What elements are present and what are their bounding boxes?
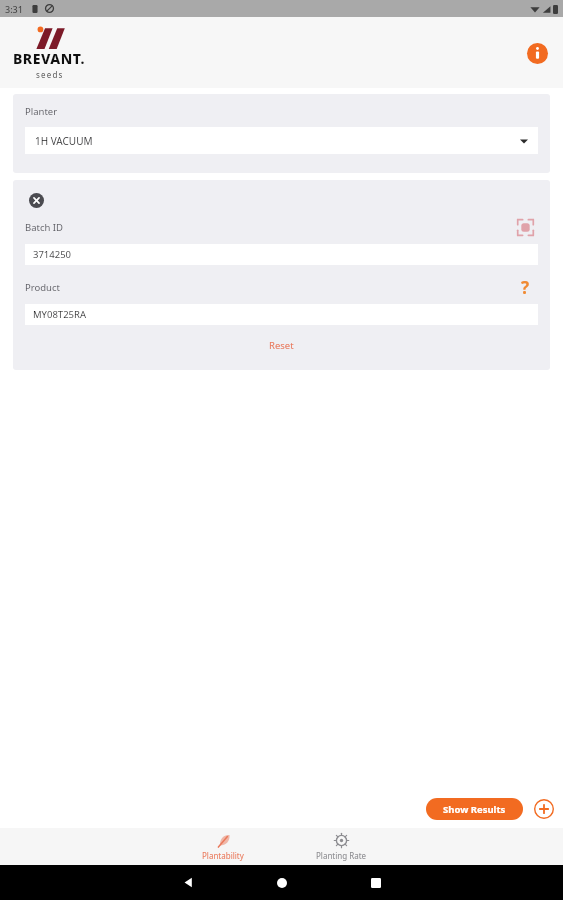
button[interactable]: Home <box>235 865 329 900</box>
button[interactable]: Add <box>531 796 557 822</box>
staticText: Show Results <box>443 803 506 816</box>
staticText: 1H VACUUM <box>35 134 520 148</box>
button[interactable]: 3714250 <box>25 244 538 265</box>
staticText: ? <box>521 276 530 299</box>
button[interactable]: MY08T25RA <box>25 304 538 325</box>
staticText: 3:31 <box>5 3 23 15</box>
button[interactable]: Product help <box>512 274 538 300</box>
button[interactable]: Scan barcode <box>512 214 538 240</box>
staticText: Batch ID <box>25 221 512 234</box>
staticText: Reset <box>269 339 294 352</box>
staticText: BREVANT. <box>13 49 86 68</box>
button[interactable]: Planting Rate <box>282 828 400 865</box>
button[interactable]: 1H VACUUM <box>25 127 538 154</box>
button[interactable]: Reset <box>25 335 538 355</box>
button[interactable]: Plantability <box>164 828 282 865</box>
button[interactable]: Information <box>520 36 554 70</box>
staticText: Plantability <box>202 850 244 861</box>
staticText: 3714250 <box>33 248 72 261</box>
staticText: Planting Rate <box>316 850 367 861</box>
button[interactable]: Back <box>141 865 235 900</box>
staticText: Planter <box>25 105 58 118</box>
staticText: seeds <box>36 69 64 80</box>
button[interactable]: Remove batch <box>25 189 47 211</box>
staticText: MY08T25RA <box>33 308 86 321</box>
button[interactable]: Recent apps <box>329 865 423 900</box>
button[interactable]: Show Results <box>426 798 523 820</box>
staticText: Product <box>25 281 512 294</box>
